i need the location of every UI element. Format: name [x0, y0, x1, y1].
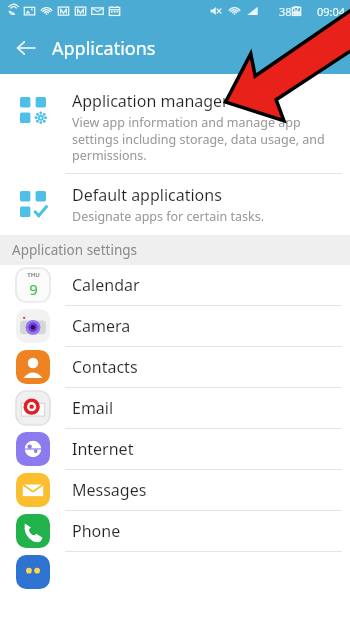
staticText: 38% [279, 4, 301, 19]
staticText: Internet [72, 438, 134, 460]
staticText: Contacts [72, 356, 138, 378]
staticText: Designate apps for certain tasks. [72, 208, 264, 225]
staticText: 9 [29, 279, 38, 299]
button[interactable]: Internet [0, 429, 350, 469]
staticText: View app information and manage app sett… [72, 114, 338, 163]
button[interactable]: Email [0, 388, 350, 428]
staticText: Messages [72, 479, 147, 501]
button[interactable]: Phone [0, 511, 350, 551]
staticText: 09:04 [317, 4, 346, 19]
button[interactable]: Camera [0, 306, 350, 346]
button[interactable]: Messages [0, 470, 350, 510]
staticText: Application manager [72, 90, 229, 112]
staticText: Email [72, 397, 114, 419]
button[interactable]: Application manager [0, 80, 350, 173]
staticText: Camera [72, 315, 131, 337]
button[interactable]: THU [0, 265, 350, 305]
staticText: THU [27, 271, 40, 279]
button[interactable]: Contacts [0, 347, 350, 387]
button[interactable] [0, 552, 350, 592]
button[interactable]: Default applications [0, 174, 350, 235]
staticText: Applications [52, 36, 156, 61]
staticText: Default applications [72, 184, 222, 206]
staticText: Phone [72, 520, 121, 542]
staticText: Application settings [12, 241, 138, 259]
staticText: Calendar [72, 274, 140, 296]
button[interactable]: Navigate up [0, 22, 52, 74]
